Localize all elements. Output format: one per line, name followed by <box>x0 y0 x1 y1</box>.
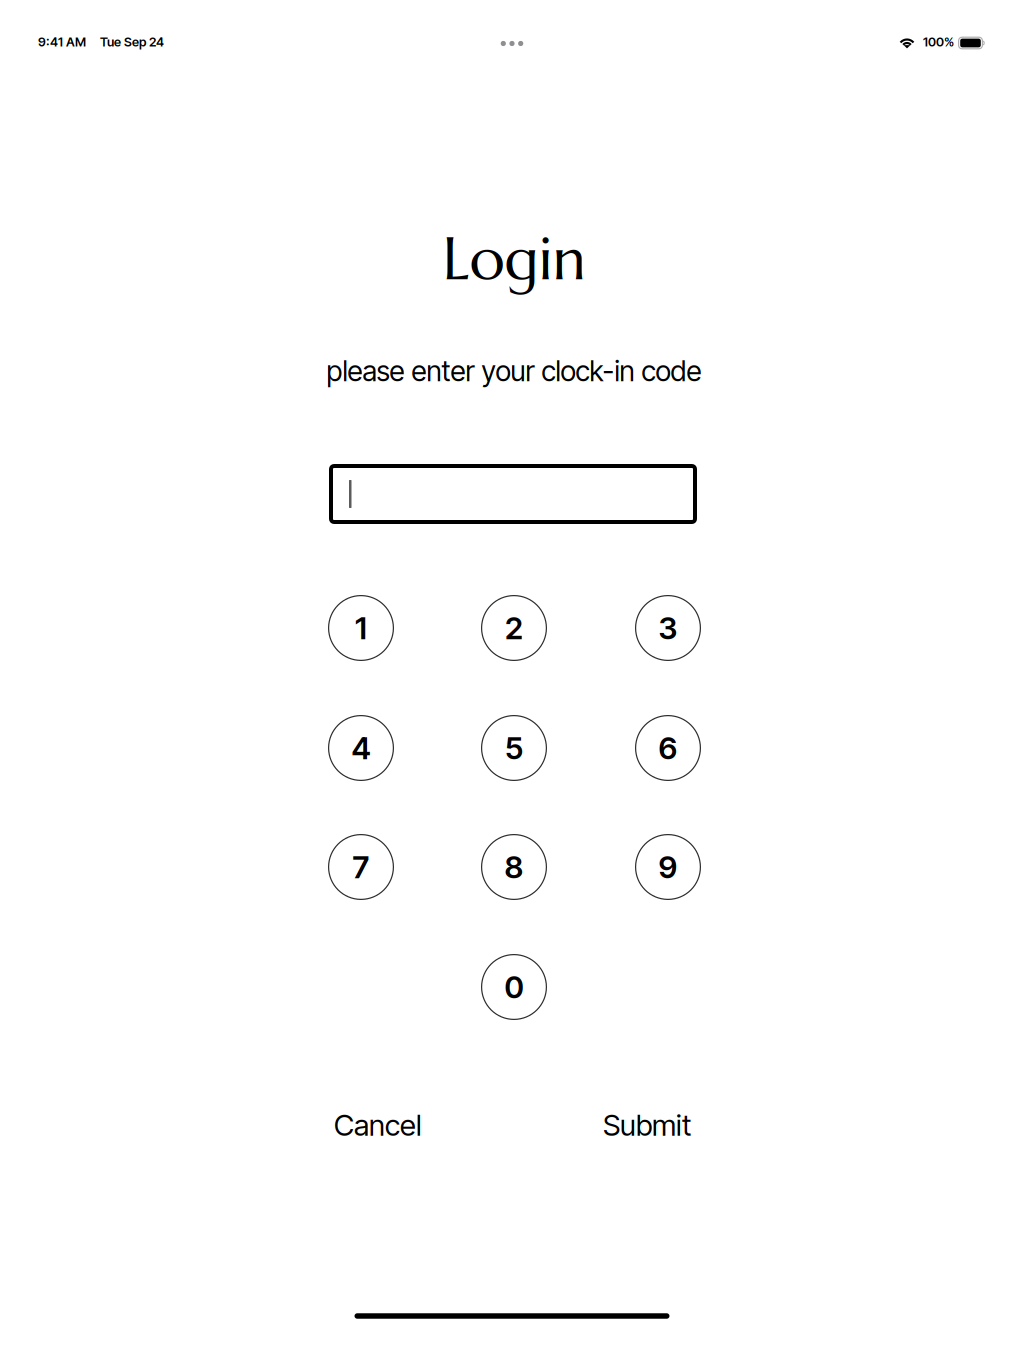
button[interactable]: 7 <box>328 834 394 900</box>
button[interactable]: 3 <box>635 595 701 661</box>
staticText: 4 <box>351 729 370 766</box>
staticText: 3 <box>658 609 677 646</box>
button[interactable]: 9 <box>635 834 701 900</box>
staticText: please enter your clock-in code <box>326 354 701 388</box>
button[interactable]: 2 <box>481 595 547 661</box>
button[interactable]: Submit <box>572 1099 722 1151</box>
button[interactable]: Cancel <box>303 1099 453 1151</box>
staticText: 9:41 AM <box>38 34 86 50</box>
staticText: 1 <box>355 609 367 646</box>
staticText: 7 <box>352 848 369 885</box>
staticText: Cancel <box>334 1107 422 1143</box>
button[interactable]: 5 <box>481 715 547 781</box>
staticText: 8 <box>504 848 523 885</box>
staticText: 0 <box>504 968 523 1005</box>
staticText: 5 <box>505 729 523 766</box>
button[interactable]: 4 <box>328 715 394 781</box>
button[interactable]: 8 <box>481 834 547 900</box>
button[interactable]: 6 <box>635 715 701 781</box>
staticText: 9 <box>658 848 677 885</box>
button[interactable]: 0 <box>481 954 547 1020</box>
staticText: Login <box>442 222 585 296</box>
staticText: 100% <box>923 34 954 50</box>
staticText: 6 <box>658 729 677 766</box>
button[interactable]: Clock-in code <box>329 464 697 524</box>
staticText: Submit <box>603 1107 691 1143</box>
staticText: 2 <box>505 609 523 646</box>
button[interactable]: 1 <box>328 595 394 661</box>
staticText: Tue Sep 24 <box>100 34 164 50</box>
